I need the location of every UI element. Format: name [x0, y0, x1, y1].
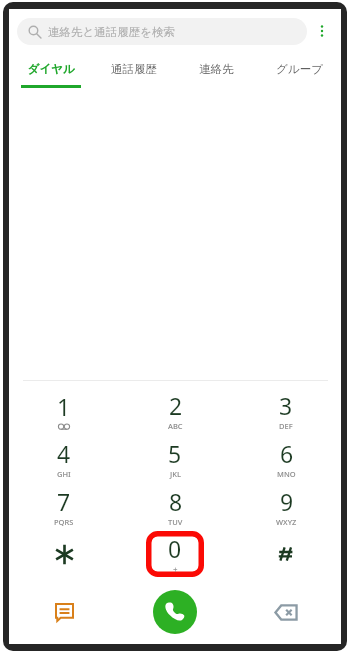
- staticText: GHI: [57, 469, 71, 479]
- staticText: 8: [169, 486, 183, 517]
- staticText: 6: [280, 438, 294, 469]
- button[interactable]: [29, 530, 99, 578]
- button[interactable]: 5: [140, 434, 210, 482]
- staticText: 連絡先と通話履歴を検索: [48, 25, 176, 39]
- staticText: DEF: [279, 421, 293, 431]
- button[interactable]: 0: [146, 530, 204, 578]
- button[interactable]: 3: [251, 386, 321, 434]
- staticText: +: [173, 564, 178, 575]
- staticText: 3: [279, 390, 293, 421]
- staticText: ABC: [168, 421, 183, 431]
- button[interactable]: ダイヤル: [9, 53, 92, 85]
- staticText: グループ: [276, 62, 323, 76]
- button[interactable]: 連絡先と通話履歴を検索: [17, 18, 307, 45]
- staticText: 0: [168, 533, 182, 564]
- button[interactable]: 2: [140, 386, 210, 434]
- staticText: ダイヤル: [27, 62, 75, 76]
- button[interactable]: グループ: [258, 53, 341, 85]
- button[interactable]: 通話履歴: [92, 53, 175, 85]
- staticText: PQRS: [54, 517, 74, 527]
- staticText: 4: [57, 438, 71, 469]
- button[interactable]: Send message: [44, 592, 84, 632]
- staticText: 連絡先: [199, 62, 234, 76]
- button[interactable]: Backspace: [266, 592, 306, 632]
- button[interactable]: 連絡先: [175, 53, 258, 85]
- button[interactable]: [251, 530, 321, 578]
- staticText: MNO: [277, 469, 296, 479]
- staticText: 2: [169, 390, 183, 421]
- staticText: 9: [280, 486, 294, 517]
- button[interactable]: 4: [29, 434, 99, 482]
- staticText: JKL: [170, 469, 181, 479]
- staticText: 通話履歴: [111, 62, 157, 76]
- button[interactable]: More options: [307, 16, 337, 46]
- staticText: 1: [57, 391, 71, 422]
- button[interactable]: 6: [251, 434, 321, 482]
- staticText: 5: [168, 438, 182, 469]
- button[interactable]: 1: [29, 386, 99, 434]
- staticText: 7: [57, 486, 71, 517]
- button[interactable]: 8: [140, 482, 210, 530]
- button[interactable]: 7: [29, 482, 99, 530]
- button[interactable]: Call: [153, 590, 197, 634]
- staticText: TUV: [168, 517, 183, 527]
- staticText: WXYZ: [276, 517, 297, 527]
- button[interactable]: 9: [251, 482, 321, 530]
